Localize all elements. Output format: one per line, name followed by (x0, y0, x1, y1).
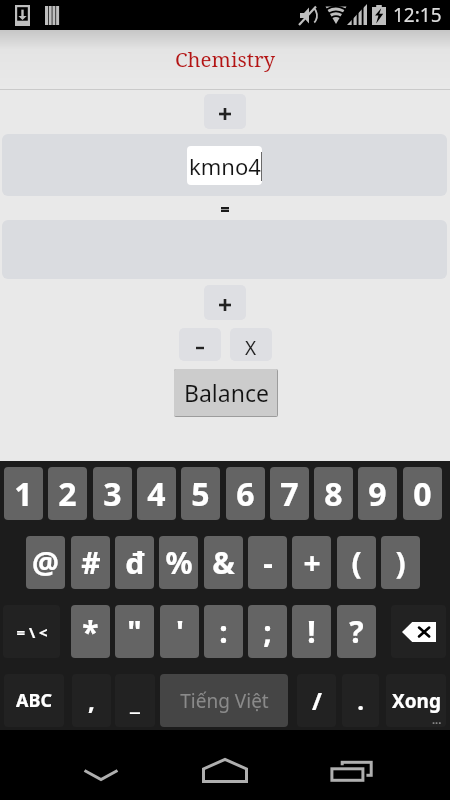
button[interactable]: ( (337, 536, 376, 589)
staticText: Xong (392, 688, 441, 714)
staticText: 0 (413, 472, 432, 516)
button[interactable]: 4 (137, 467, 176, 520)
button[interactable]: ' (160, 605, 199, 658)
button[interactable]: kmno4 (187, 146, 262, 185)
button[interactable]: * (71, 605, 110, 658)
staticText: ; (263, 611, 272, 652)
staticText: : (219, 611, 228, 652)
button[interactable]: 0 (403, 467, 442, 520)
button[interactable]: Balance (174, 369, 278, 417)
staticText: 4 (147, 472, 166, 516)
button[interactable]: " (115, 605, 154, 658)
button[interactable]: _ (115, 674, 155, 727)
staticText: Chemistry (175, 45, 276, 73)
button[interactable]: . (342, 674, 379, 727)
button[interactable]: & (204, 536, 243, 589)
staticText: + (303, 542, 321, 583)
staticText: 9 (368, 472, 387, 516)
staticText: @ (32, 542, 59, 583)
staticText: ( (351, 542, 362, 583)
staticText: X (245, 335, 257, 361)
staticText: - (263, 542, 273, 583)
staticText: 6 (236, 472, 255, 516)
button[interactable]: 7 (270, 467, 309, 520)
staticText: * (82, 611, 99, 652)
button[interactable]: + (204, 285, 246, 320)
button[interactable]: ? (337, 605, 376, 658)
button[interactable]: Backspace (391, 605, 446, 658)
button[interactable]: % (159, 536, 198, 589)
button[interactable]: - (179, 328, 221, 361)
button[interactable]: 5 (181, 467, 220, 520)
staticText: . (357, 684, 364, 717)
staticText: & (212, 542, 235, 583)
staticText: 3 (103, 472, 122, 516)
staticText: , (88, 684, 95, 717)
button[interactable]: ABC (4, 674, 64, 727)
button[interactable]: ; (248, 605, 287, 658)
staticText: 2 (58, 472, 77, 516)
button[interactable]: : (204, 605, 243, 658)
staticText: 12:15 (393, 2, 442, 28)
staticText: đ (125, 542, 145, 583)
button[interactable]: 8 (314, 467, 353, 520)
button[interactable]: / (297, 674, 336, 727)
staticText: _ (130, 684, 140, 717)
button[interactable]: ) (381, 536, 420, 589)
button[interactable]: 3 (93, 467, 132, 520)
staticText: ! (307, 611, 316, 652)
staticText: 8 (324, 472, 343, 516)
button[interactable]: đ (115, 536, 154, 589)
button[interactable]: # (71, 536, 110, 589)
staticText: ' (176, 611, 184, 652)
staticText: 5 (191, 472, 210, 516)
staticText: % (165, 542, 193, 583)
staticText: ... (432, 712, 442, 727)
button[interactable]: Hide keyboard (62, 740, 140, 800)
staticText: Balance (184, 377, 269, 408)
staticText: 1 (14, 472, 33, 516)
staticText: ) (395, 542, 406, 583)
button[interactable]: Tiếng Việt (160, 674, 288, 727)
button[interactable]: 1 (4, 467, 43, 520)
button[interactable]: Home (186, 740, 264, 800)
button[interactable]: 6 (226, 467, 265, 520)
button[interactable]: , (72, 674, 111, 727)
button[interactable]: @ (26, 536, 65, 589)
staticText: / (312, 684, 322, 717)
button[interactable]: = \ < (3, 605, 60, 658)
staticText: ABC (16, 688, 52, 713)
staticText: # (81, 542, 101, 583)
button[interactable]: X (230, 328, 272, 361)
button[interactable]: ! (292, 605, 331, 658)
staticText: " (127, 611, 142, 652)
staticText: kmno4 (189, 151, 261, 181)
button[interactable]: 2 (48, 467, 87, 520)
button[interactable]: - (248, 536, 287, 589)
button[interactable]: + (204, 94, 246, 129)
staticText: 7 (280, 472, 299, 516)
button[interactable]: + (292, 536, 331, 589)
button[interactable]: 9 (358, 467, 397, 520)
staticText: Tiếng Việt (180, 688, 269, 714)
staticText: = \ < (16, 622, 48, 642)
staticText: ? (349, 611, 364, 652)
button[interactable]: Xong (386, 674, 446, 727)
button[interactable]: Recent apps (314, 740, 392, 800)
